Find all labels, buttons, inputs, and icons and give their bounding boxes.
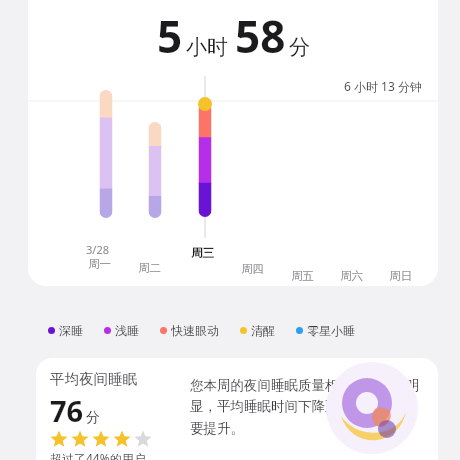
staticText: 5 bbox=[157, 6, 183, 66]
staticText: 浅睡 bbox=[115, 323, 139, 338]
button[interactable]: 浅睡 bbox=[104, 323, 139, 338]
staticText: 3/28 bbox=[86, 242, 109, 257]
staticText: 清醒 bbox=[251, 323, 275, 338]
button[interactable]: 深睡 bbox=[48, 323, 83, 338]
staticText: 超过了44%的用户 bbox=[50, 450, 146, 460]
button[interactable]: 零星小睡 bbox=[296, 323, 355, 338]
staticText: 您本周的夜间睡眠质量相比上周下降明显，平均睡眠时间下降至时 13 分，需要提升。 bbox=[190, 377, 428, 437]
staticText: 分 bbox=[289, 34, 310, 60]
staticText: 平均夜间睡眠 bbox=[50, 370, 137, 388]
button[interactable]: 清醒 bbox=[240, 323, 275, 338]
button[interactable]: 周一 bbox=[88, 257, 111, 271]
button[interactable]: 周三 bbox=[191, 246, 214, 260]
staticText: 76 bbox=[50, 391, 84, 430]
button[interactable]: 周五 bbox=[291, 269, 314, 283]
button[interactable]: 周六 bbox=[340, 269, 363, 283]
staticText: 58 bbox=[235, 6, 286, 66]
other: Logo bbox=[36, 358, 438, 460]
button[interactable]: 平均夜间睡眠 bbox=[36, 358, 438, 460]
button[interactable]: 周日 bbox=[389, 269, 412, 283]
staticText: 6 小时 13 分钟 bbox=[344, 78, 422, 94]
button[interactable]: 周四 bbox=[241, 262, 264, 276]
button[interactable]: 周二 bbox=[138, 261, 161, 275]
button[interactable]: 快速眼动 bbox=[160, 323, 219, 338]
staticText: 零星小睡 bbox=[307, 323, 355, 338]
staticText: 快速眼动 bbox=[171, 323, 219, 338]
staticText: 小时 bbox=[186, 34, 228, 60]
staticText: 深睡 bbox=[59, 323, 83, 338]
staticText: 分 bbox=[86, 409, 100, 427]
